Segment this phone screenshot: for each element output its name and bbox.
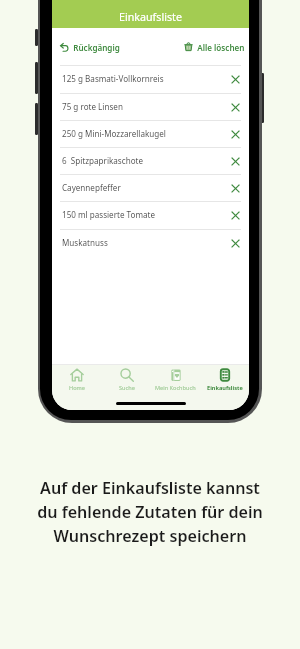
button[interactable]: Mein Kochbuch (151, 365, 200, 392)
staticText: Muskatnuss (62, 237, 108, 248)
staticText: Alle löschen (193, 42, 245, 53)
staticText: Cayennepfeffer (62, 182, 121, 193)
button[interactable]: Alle löschen (182, 37, 247, 57)
button[interactable]: 75 g rote Linsen (52, 93, 249, 120)
button[interactable]: Entfernen (227, 126, 243, 142)
staticText: 150 ml passierte Tomate (62, 209, 156, 220)
button[interactable]: Entfernen (227, 207, 243, 223)
button[interactable]: Home (52, 365, 102, 392)
staticText: 250 g Mini-Mozzarellakugel (62, 128, 166, 139)
staticText: 75 g rote Linsen (62, 101, 123, 112)
button[interactable]: Suche (102, 365, 151, 392)
button[interactable]: Einkaufsliste (200, 365, 249, 392)
staticText: Mein Kochbuch (155, 384, 196, 392)
button[interactable]: 6 Spitzpaprikaschote (52, 147, 249, 174)
button[interactable]: Rückgängig (58, 37, 122, 57)
button[interactable]: Entfernen (227, 235, 243, 251)
staticText: 125 g Basmati-Vollkornreis (62, 73, 164, 84)
staticText: Rückgängig (69, 42, 120, 53)
button[interactable]: Entfernen (227, 71, 243, 87)
staticText: 6 Spitzpaprikaschote (62, 155, 144, 166)
staticText: Einkaufsliste (207, 384, 243, 392)
button[interactable]: Entfernen (227, 153, 243, 169)
button[interactable]: Entfernen (227, 180, 243, 196)
button[interactable]: Cayennepfeffer (52, 174, 249, 201)
staticText: Auf der Einkaufsliste kannst du fehlende… (37, 477, 263, 546)
staticText: Home (69, 384, 85, 392)
button[interactable]: 250 g Mini-Mozzarellakugel (52, 120, 249, 147)
staticText: Einkaufsliste (119, 10, 182, 25)
button[interactable]: 150 ml passierte Tomate (52, 201, 249, 228)
button[interactable]: Entfernen (227, 99, 243, 115)
button[interactable]: Muskatnuss (52, 229, 249, 256)
button[interactable]: 125 g Basmati-Vollkornreis (52, 65, 249, 92)
staticText: Suche (119, 384, 135, 392)
